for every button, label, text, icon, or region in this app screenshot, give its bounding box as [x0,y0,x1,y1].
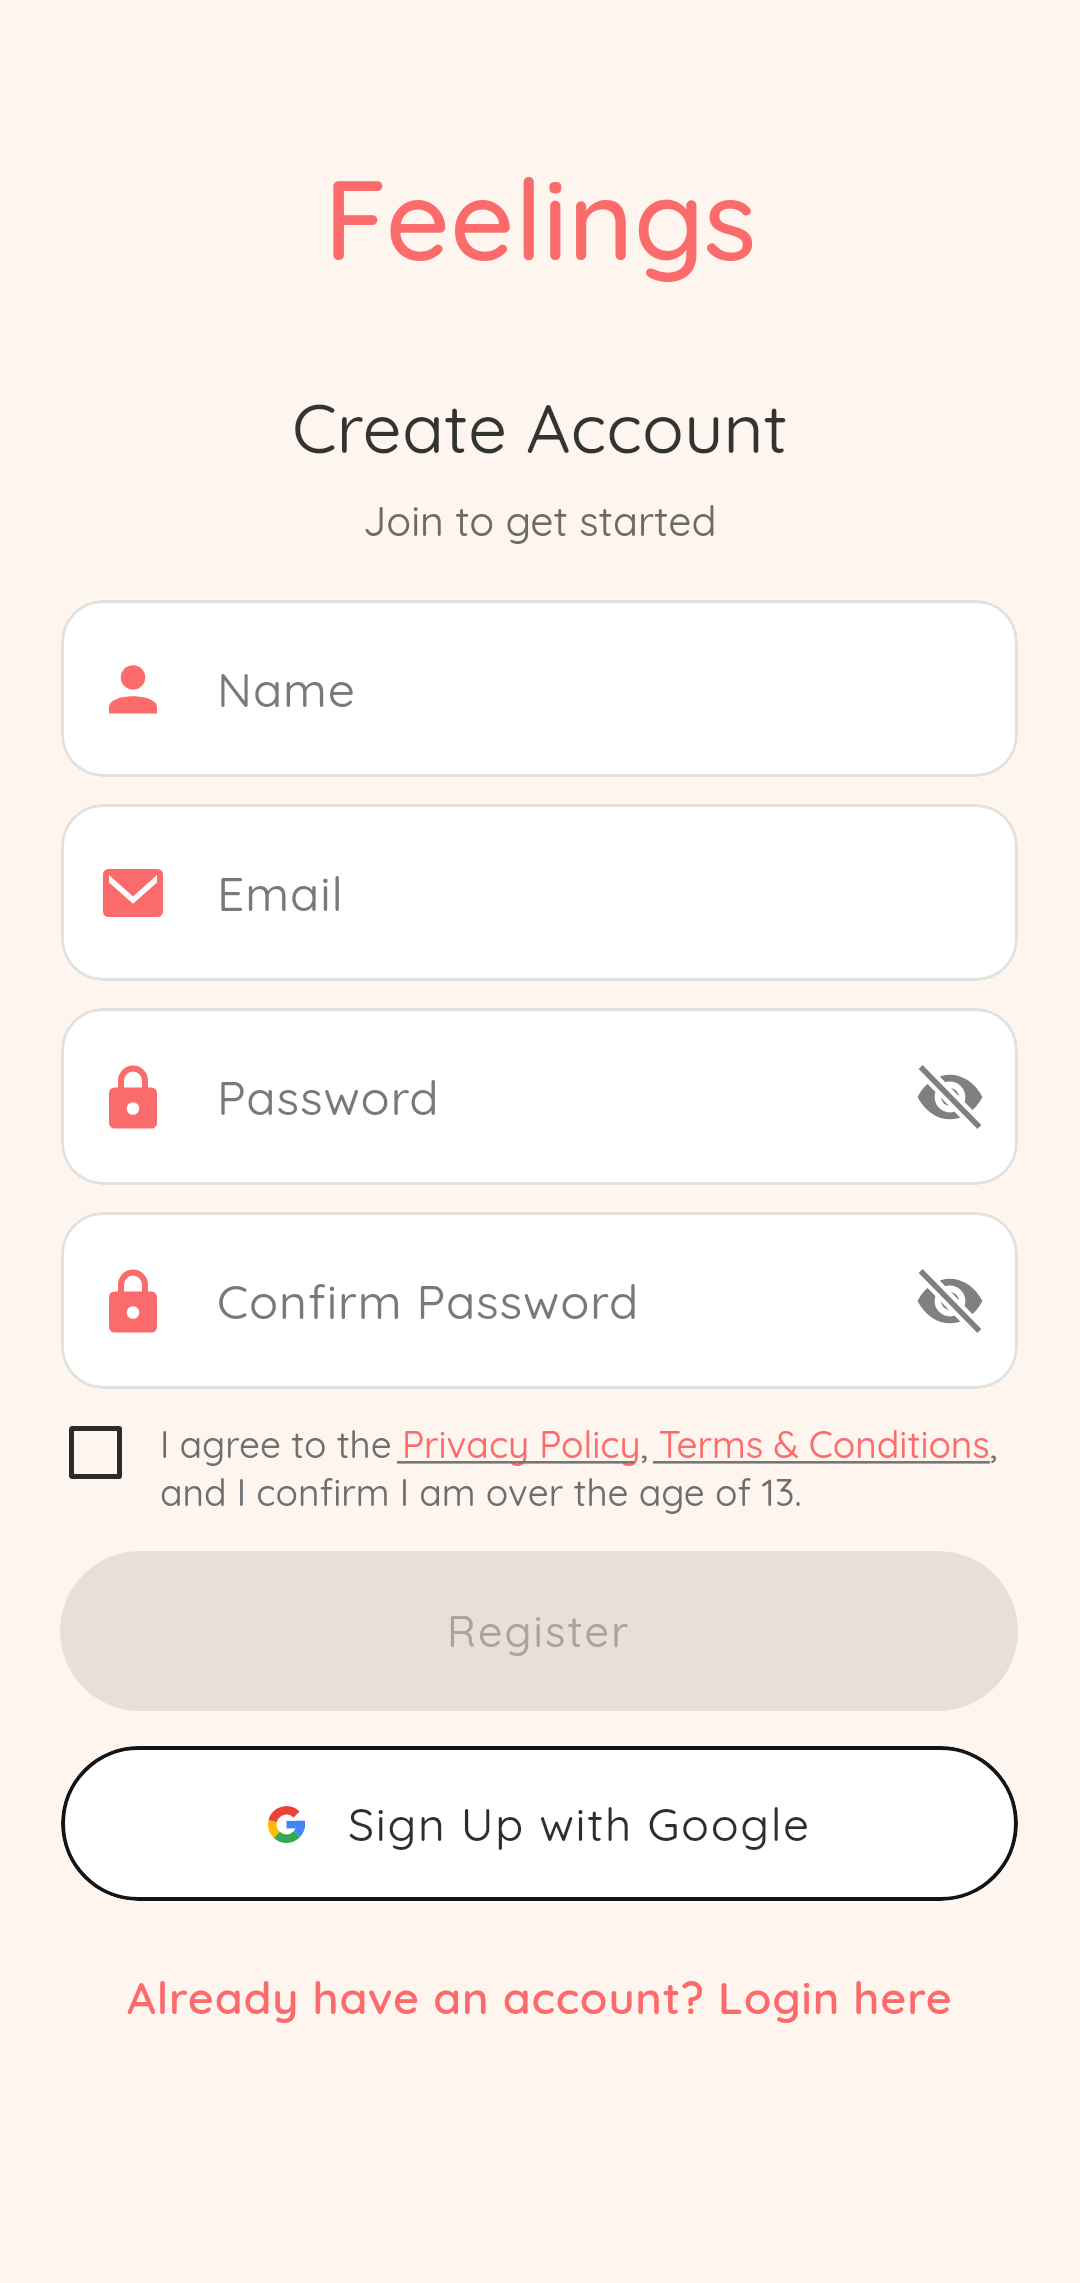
staticText: Sign Up with Google [348,1795,811,1853]
staticText: I agree to the Privacy Policy, Terms & C… [160,1421,1025,1516]
staticText: Confirm Password [217,1271,640,1331]
button[interactable]: I agree checkbox [69,1426,122,1479]
button[interactable]: Password [61,1008,1018,1185]
button[interactable]: Email [61,804,1018,981]
staticText: Password [217,1067,440,1127]
staticText: Email [217,863,344,923]
button[interactable]: Show password [915,1266,985,1336]
staticText: Register [447,1604,631,1658]
staticText: Join to get started [363,495,717,546]
button[interactable]: Sign Up with Google [61,1746,1018,1901]
staticText: Already have an account? Login here [127,1969,953,2025]
staticText: Name [217,659,357,719]
button[interactable]: Register [60,1551,1018,1711]
staticText: Feelings [324,148,757,288]
button[interactable]: Name [61,600,1018,777]
button[interactable]: Already have an account? Login here [127,1969,953,2025]
staticText: Create Account [292,384,788,470]
button[interactable]: Show password [915,1062,985,1132]
button[interactable]: Confirm Password [61,1212,1018,1389]
